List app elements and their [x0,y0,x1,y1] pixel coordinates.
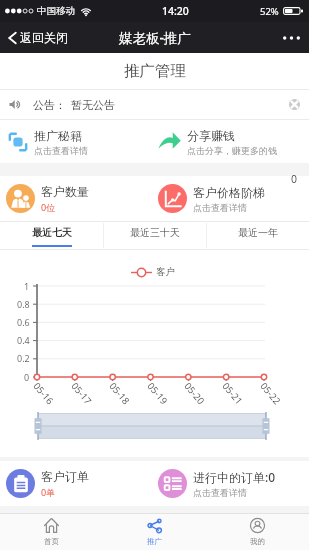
button[interactable]: 客户数量 [6,176,154,221]
staticText: 0.8 [17,298,30,310]
staticText: 05-20 [181,380,207,407]
staticText: 最近七天 [32,226,72,239]
staticText: 最近三十天 [130,226,180,239]
staticText: 我的 [250,537,265,546]
staticText: 点击查看详情 [34,145,88,156]
button[interactable]: 我的 [206,513,309,550]
staticText: 最近一年 [238,226,278,239]
staticText: 中国移动 [37,5,75,17]
button[interactable]: 进行中的订单:0 [158,461,309,506]
staticText: 0.2 [17,352,30,364]
staticText: 首页 [44,537,59,546]
staticText: 05-16 [30,380,56,407]
button[interactable]: 公告： [9,90,300,119]
button[interactable]: 推广 [103,513,206,550]
staticText: 客户数量 [41,184,89,199]
staticText: 0.4 [17,334,30,346]
button[interactable]: 最近七天 [0,222,103,249]
staticText: 05-21 [219,380,245,407]
button[interactable]: More options [283,22,300,53]
staticText: 媒老板-推广 [119,29,191,47]
staticText: 0位 [41,201,56,213]
staticText: 0单 [41,486,56,498]
staticText: 点击查看详情 [193,202,247,213]
staticText: 14:20 [162,4,189,18]
staticText: 1 [24,280,30,292]
button[interactable]: Close announcement [289,99,300,110]
staticText: 0 [291,172,298,186]
button[interactable]: 推广秘籍 [8,120,154,163]
staticText: 暂无公告 [71,98,115,112]
staticText: 52% [260,5,279,18]
staticText: 点击查看详情 [193,487,247,498]
staticText: 推广管理 [124,61,186,81]
staticText: 0.6 [17,316,30,328]
button[interactable]: 返回 [8,22,44,53]
button[interactable]: 关闭 [44,22,68,53]
button[interactable]: 客户价格阶梯 [158,176,309,221]
staticText: 05-22 [257,380,283,407]
button[interactable]: 最近三十天 [104,222,206,249]
staticText: 05-18 [106,380,132,407]
staticText: 点击分享，赚更多的钱 [187,145,277,156]
staticText: 公告： [33,98,66,112]
staticText: 推广 [147,537,162,546]
staticText: 客户订单 [41,469,89,484]
button[interactable]: 分享赚钱 [158,120,309,163]
staticText: 关闭 [44,30,68,45]
staticText: 分享赚钱 [187,128,235,143]
staticText: 返回 [20,30,44,45]
staticText: 05-19 [144,380,170,407]
staticText: 客户价格阶梯 [193,185,265,200]
button[interactable]: 最近一年 [207,222,309,249]
button[interactable]: 客户订单 [6,461,154,506]
staticText: 0 [24,371,30,383]
staticText: 客户 [156,266,175,278]
button[interactable]: 首页 [0,513,103,550]
staticText: 05-17 [68,380,94,407]
staticText: 进行中的订单:0 [193,469,276,485]
staticText: 推广秘籍 [34,128,82,143]
